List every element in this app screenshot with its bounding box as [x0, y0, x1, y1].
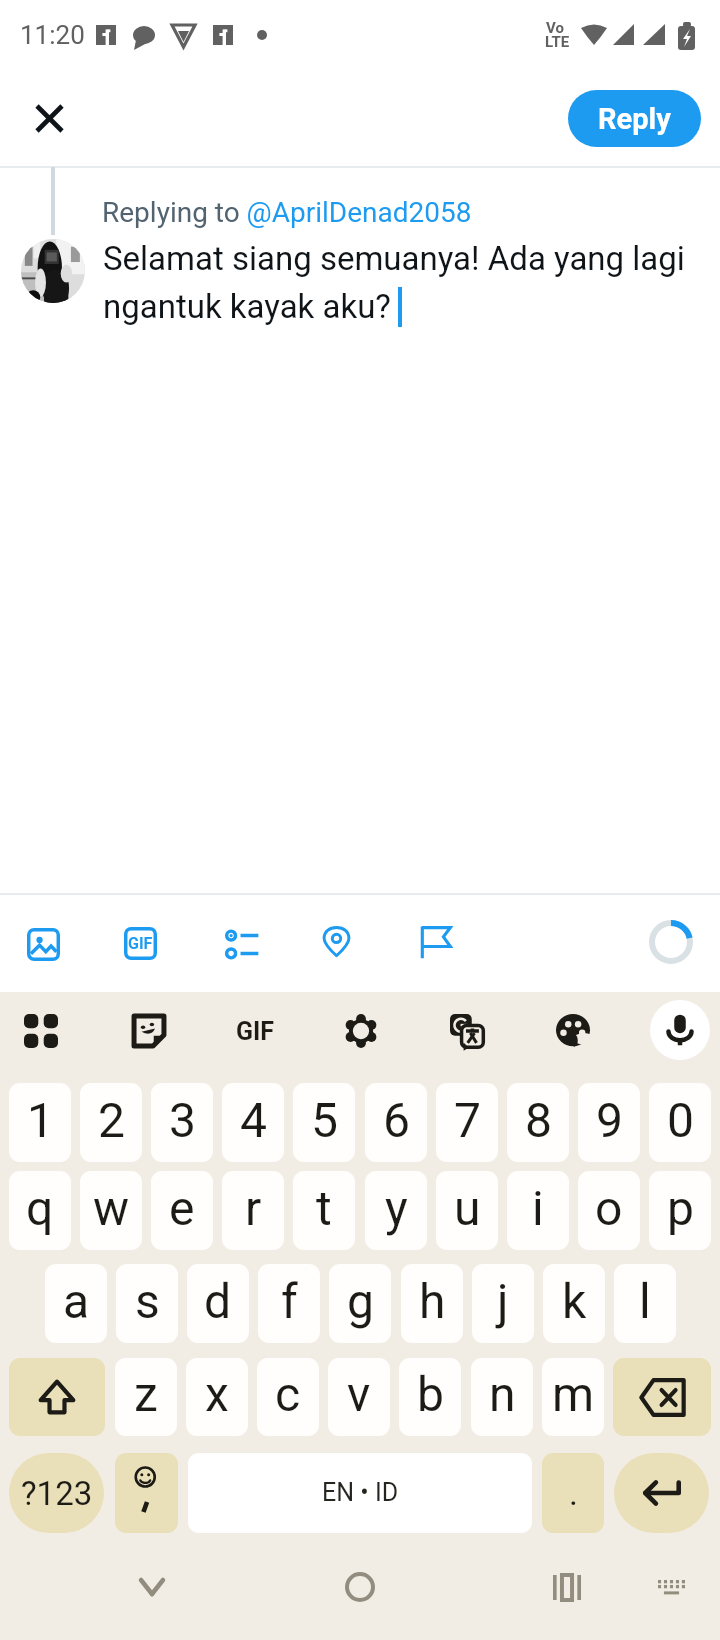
staticText: 8: [525, 1092, 552, 1148]
staticText: LTE: [545, 33, 570, 51]
button[interactable]: Enter: [614, 1453, 709, 1533]
button[interactable]: c: [257, 1358, 319, 1436]
button[interactable]: 0: [649, 1083, 711, 1162]
button[interactable]: Home: [328, 1555, 392, 1619]
staticText: j: [497, 1273, 509, 1329]
button[interactable]: Replying to @AprilDenad2058: [102, 196, 472, 229]
staticText: c: [275, 1366, 301, 1422]
button[interactable]: Settings: [332, 1002, 390, 1060]
staticText: b: [417, 1366, 444, 1422]
button[interactable]: Recents: [535, 1555, 599, 1619]
button[interactable]: Hide keyboard: [120, 1555, 184, 1619]
button[interactable]: Reply: [568, 90, 701, 147]
staticText: x: [205, 1366, 229, 1422]
button[interactable]: u: [436, 1171, 498, 1250]
staticText: Reply: [598, 102, 671, 136]
button[interactable]: Media: [7, 908, 79, 980]
staticText: t: [316, 1180, 332, 1236]
button[interactable]: r: [222, 1171, 284, 1250]
staticText: 2: [98, 1092, 125, 1148]
button[interactable]: Switch keyboard: [639, 1555, 703, 1619]
button[interactable]: 4: [222, 1083, 284, 1162]
staticText: 9: [596, 1092, 623, 1148]
staticText: i: [532, 1180, 544, 1236]
button[interactable]: 2: [80, 1083, 142, 1162]
button[interactable]: Backspace: [613, 1358, 711, 1436]
staticText: 6: [383, 1092, 410, 1148]
button[interactable]: n: [471, 1358, 533, 1436]
button[interactable]: w: [80, 1171, 142, 1250]
button[interactable]: m: [542, 1358, 604, 1436]
staticText: GIF: [236, 1017, 275, 1046]
button[interactable]: a: [45, 1264, 107, 1343]
button[interactable]: v: [328, 1358, 390, 1436]
staticText: ?123: [21, 1474, 93, 1513]
button[interactable]: s: [116, 1264, 178, 1343]
button[interactable]: Voice input: [650, 1000, 710, 1060]
button[interactable]: z: [115, 1358, 177, 1436]
button[interactable]: Stickers: [120, 1002, 178, 1060]
staticText: e: [169, 1180, 195, 1236]
button[interactable]: Close: [13, 82, 85, 154]
button[interactable]: x: [186, 1358, 248, 1436]
button[interactable]: EN • ID: [188, 1453, 532, 1533]
staticText: s: [135, 1273, 160, 1329]
button[interactable]: b: [399, 1358, 461, 1436]
button[interactable]: y: [365, 1171, 427, 1250]
button[interactable]: 6: [365, 1083, 427, 1162]
staticText: q: [26, 1180, 54, 1236]
button[interactable]: Emoji: [115, 1453, 178, 1533]
button[interactable]: Character count: [643, 914, 699, 970]
button[interactable]: Apps: [12, 1002, 70, 1060]
staticText: 7: [454, 1092, 481, 1148]
staticText: 5: [311, 1092, 338, 1148]
staticText: k: [562, 1273, 587, 1329]
button[interactable]: q: [9, 1171, 71, 1250]
staticText: a: [63, 1273, 90, 1329]
button[interactable]: 9: [578, 1083, 640, 1162]
staticText: y: [385, 1180, 408, 1236]
staticText: p: [667, 1180, 694, 1236]
staticText: m: [552, 1366, 595, 1422]
button[interactable]: Themes: [544, 1002, 602, 1060]
button[interactable]: o: [578, 1171, 640, 1250]
button[interactable]: 7: [436, 1083, 498, 1162]
button[interactable]: Poll: [206, 908, 278, 980]
staticText: GIF: [128, 934, 153, 953]
button[interactable]: .: [542, 1453, 604, 1533]
button[interactable]: ?123: [9, 1453, 104, 1533]
button[interactable]: k: [543, 1264, 605, 1343]
button[interactable]: Schedule: [399, 906, 471, 978]
button[interactable]: 5: [293, 1083, 355, 1162]
staticText: f: [281, 1273, 298, 1329]
button[interactable]: 8: [507, 1083, 569, 1162]
staticText: h: [419, 1273, 446, 1329]
button[interactable]: t: [293, 1171, 355, 1250]
button[interactable]: Translate: [438, 1002, 496, 1060]
button[interactable]: e: [151, 1171, 213, 1250]
button[interactable]: 1: [9, 1083, 71, 1162]
button[interactable]: 3: [151, 1083, 213, 1162]
button[interactable]: f: [258, 1264, 320, 1343]
staticText: r: [245, 1180, 262, 1236]
button[interactable]: p: [649, 1171, 711, 1250]
staticText: 11:20: [20, 20, 85, 50]
button[interactable]: h: [401, 1264, 463, 1343]
button[interactable]: Location: [300, 905, 372, 977]
button[interactable]: GIF: [104, 907, 176, 979]
button[interactable]: i: [507, 1171, 569, 1250]
button[interactable]: d: [187, 1264, 249, 1343]
button[interactable]: j: [472, 1264, 534, 1343]
staticText: 3: [169, 1092, 196, 1148]
button[interactable]: Shift: [9, 1358, 105, 1436]
staticText: u: [454, 1180, 481, 1236]
button[interactable]: g: [329, 1264, 391, 1343]
button[interactable]: l: [614, 1264, 676, 1343]
button[interactable]: Profile photo: [21, 239, 85, 303]
staticText: g: [347, 1273, 374, 1329]
staticText: Vo: [546, 19, 564, 37]
button[interactable]: GIF: [226, 1002, 284, 1060]
staticText: Selamat siang semuanya! Ada yang lagi ng…: [103, 239, 715, 326]
staticText: EN • ID: [322, 1478, 399, 1507]
staticText: .: [569, 1473, 578, 1513]
